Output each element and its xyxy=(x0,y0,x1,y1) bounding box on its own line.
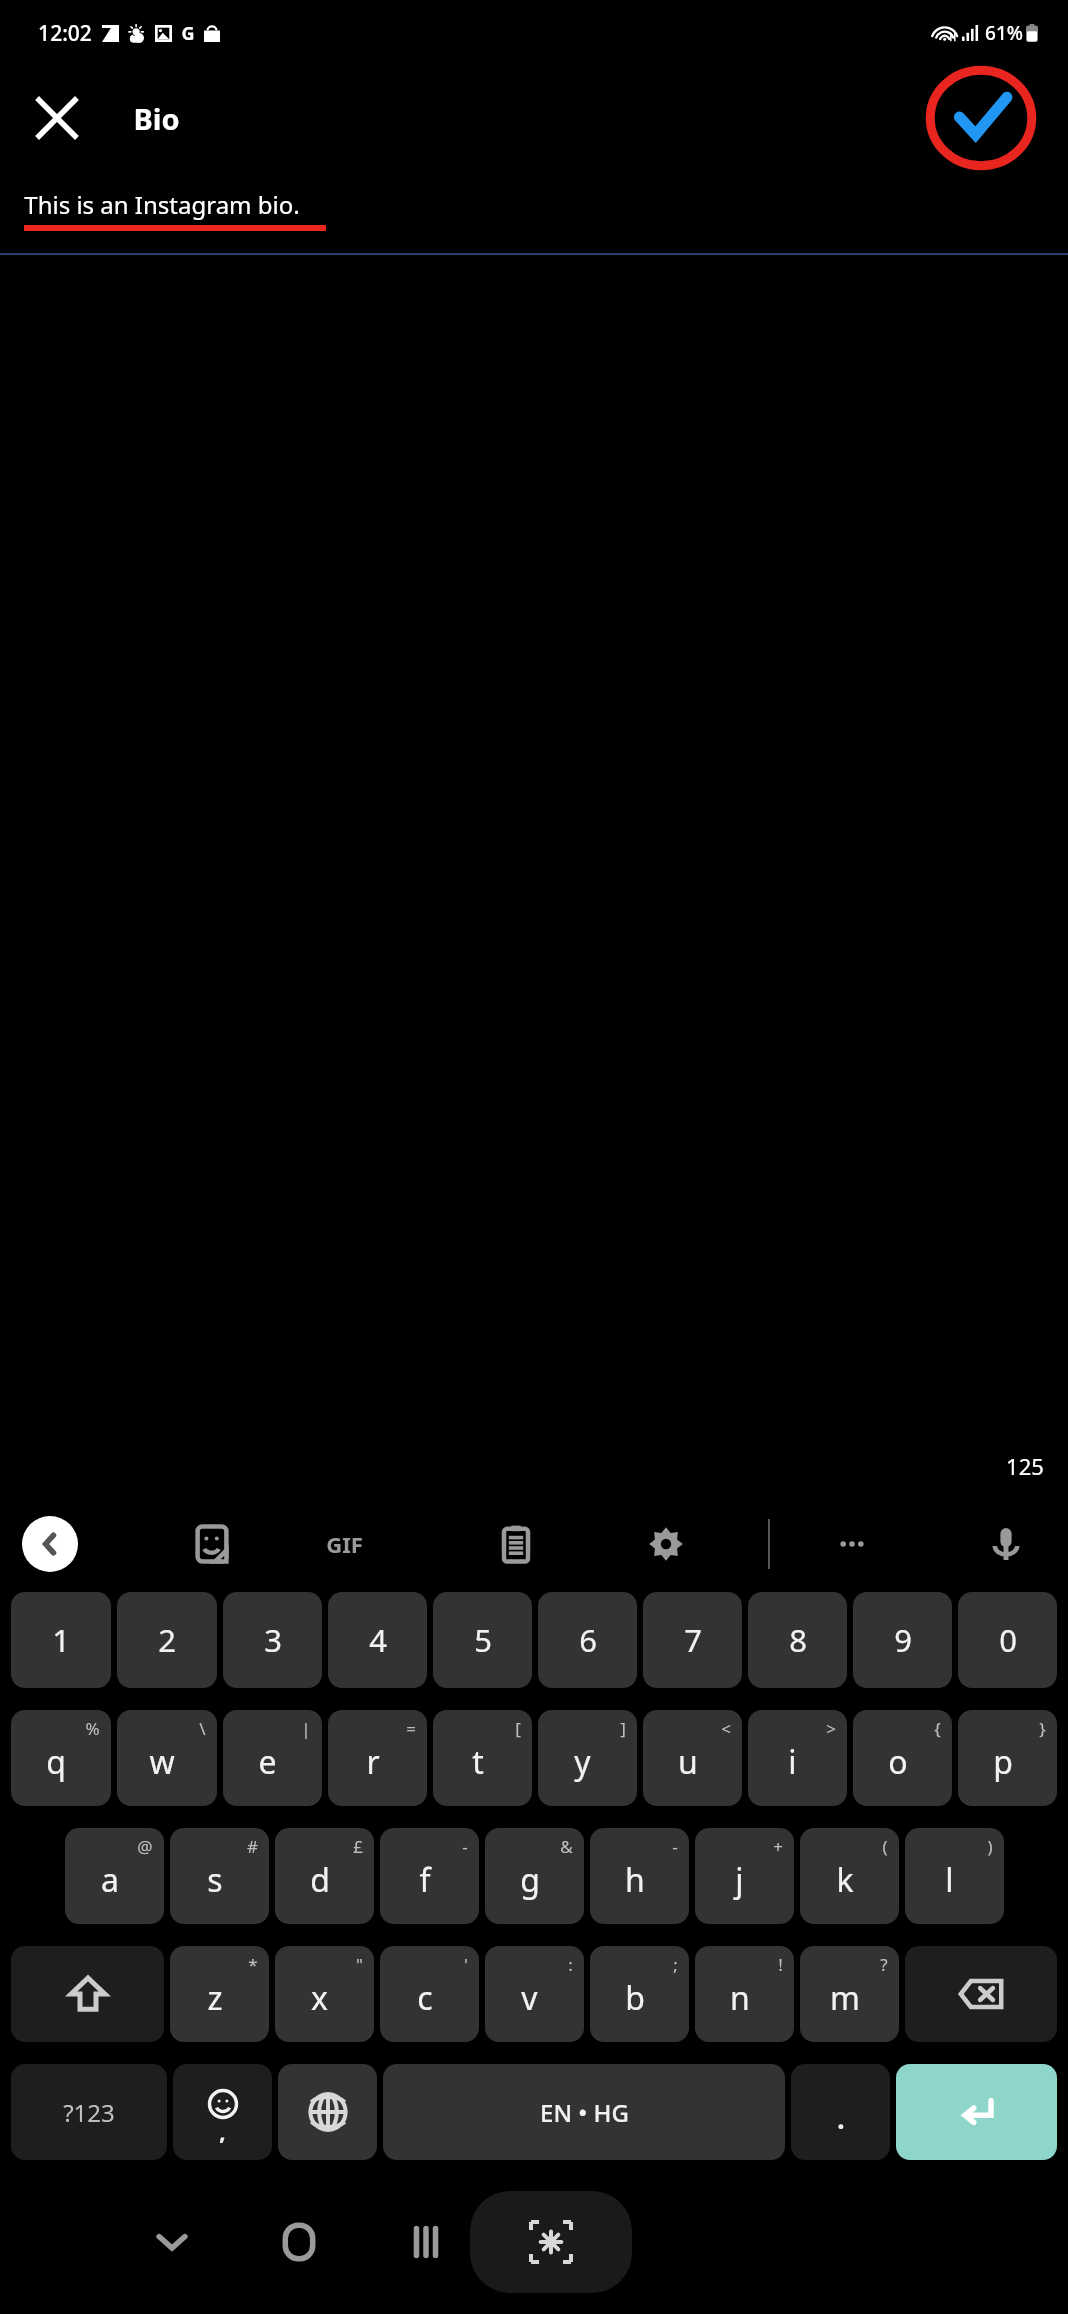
staticText: 6 xyxy=(579,1619,597,1661)
button[interactable]: x xyxy=(275,1946,374,2042)
staticText: z xyxy=(207,1976,223,2020)
button[interactable]: EN • HG xyxy=(383,2064,785,2160)
staticText: s xyxy=(207,1858,223,1902)
button[interactable]: p xyxy=(958,1710,1057,1806)
staticText: o xyxy=(888,1740,908,1784)
staticText: d xyxy=(310,1858,330,1902)
staticText: = xyxy=(406,1717,416,1740)
button[interactable]: ?123 xyxy=(11,2064,167,2160)
staticText: G xyxy=(181,21,195,46)
button[interactable]: 5 xyxy=(433,1592,532,1688)
button[interactable]: Settings xyxy=(630,1508,702,1580)
staticText: w xyxy=(149,1740,175,1784)
button[interactable]: m xyxy=(800,1946,899,2042)
staticText: ' xyxy=(464,1953,468,1976)
button[interactable]: w xyxy=(117,1710,217,1806)
button[interactable]: Voice input xyxy=(970,1508,1042,1580)
staticText: @ xyxy=(137,1835,153,1858)
button[interactable]: i xyxy=(748,1710,847,1806)
staticText: & xyxy=(560,1835,573,1858)
button[interactable]: 4 xyxy=(328,1592,427,1688)
button[interactable]: 8 xyxy=(748,1592,847,1688)
button[interactable]: 3 xyxy=(223,1592,322,1688)
staticText: < xyxy=(721,1717,731,1740)
button[interactable]: o xyxy=(853,1710,952,1806)
staticText: 61% xyxy=(985,20,1023,46)
staticText: ? xyxy=(880,1953,888,1976)
button[interactable]: g xyxy=(485,1828,584,1924)
staticText: + xyxy=(773,1835,783,1858)
button[interactable]: Hide keyboard xyxy=(128,2198,216,2286)
button[interactable]: 7 xyxy=(643,1592,742,1688)
staticText: 2 xyxy=(158,1619,176,1661)
staticText: u xyxy=(678,1740,698,1784)
button[interactable]: l xyxy=(905,1828,1004,1924)
staticText: l xyxy=(945,1858,954,1902)
button[interactable]: . xyxy=(791,2064,890,2160)
button[interactable]: n xyxy=(695,1946,794,2042)
staticText: 7 xyxy=(684,1619,702,1661)
button[interactable]: h xyxy=(590,1828,689,1924)
button[interactable]: s xyxy=(170,1828,269,1924)
button[interactable]: d xyxy=(275,1828,374,1924)
staticText: This is an Instagram bio. xyxy=(24,188,300,221)
button[interactable]: r xyxy=(328,1710,427,1806)
button[interactable]: k xyxy=(800,1828,899,1924)
button[interactable]: u xyxy=(643,1710,742,1806)
staticText: # xyxy=(247,1835,258,1858)
staticText: x xyxy=(311,1976,328,2020)
button[interactable]: z xyxy=(170,1946,269,2042)
staticText: GIF xyxy=(326,1529,363,1559)
button[interactable]: Done xyxy=(927,66,1035,170)
button[interactable]: Enter xyxy=(896,2064,1057,2160)
button[interactable]: v xyxy=(485,1946,584,2042)
button[interactable]: 2 xyxy=(117,1592,217,1688)
button[interactable]: 0 xyxy=(958,1592,1057,1688)
button[interactable]: Recents xyxy=(382,2198,470,2286)
button[interactable]: More options xyxy=(816,1508,888,1580)
staticText: r xyxy=(366,1740,380,1784)
button[interactable]: y xyxy=(538,1710,637,1806)
staticText: ! xyxy=(778,1953,783,1976)
button[interactable]: Stickers xyxy=(176,1508,248,1580)
staticText: - xyxy=(462,1835,468,1858)
button[interactable]: Change language xyxy=(278,2064,377,2160)
button[interactable]: c xyxy=(380,1946,479,2042)
staticText: , xyxy=(219,2116,226,2146)
staticText: - xyxy=(672,1835,678,1858)
button[interactable]: 9 xyxy=(853,1592,952,1688)
button[interactable]: e xyxy=(223,1710,322,1806)
button[interactable]: Clipboard xyxy=(480,1508,552,1580)
staticText: ) xyxy=(987,1835,993,1858)
button[interactable]: Shift xyxy=(11,1946,164,2042)
staticText: c xyxy=(417,1976,433,2020)
button[interactable]: Backspace xyxy=(905,1946,1057,2042)
button[interactable]: q xyxy=(11,1710,111,1806)
button[interactable]: a xyxy=(65,1828,164,1924)
staticText: 0 xyxy=(999,1619,1017,1661)
button[interactable]: Close xyxy=(22,83,92,153)
staticText: t xyxy=(472,1740,484,1784)
staticText: 8 xyxy=(789,1619,807,1661)
staticText: f xyxy=(419,1858,431,1902)
staticText: n xyxy=(730,1976,750,2020)
button[interactable]: Expand toolbar xyxy=(22,1516,78,1572)
button[interactable]: Emoji xyxy=(173,2064,272,2160)
button[interactable]: t xyxy=(433,1710,532,1806)
button[interactable]: This is an Instagram bio. xyxy=(24,188,1068,231)
button[interactable]: GIF xyxy=(308,1508,380,1580)
staticText: Bio xyxy=(133,99,180,138)
staticText: 1 xyxy=(52,1619,70,1661)
button[interactable]: b xyxy=(590,1946,689,2042)
button[interactable]: 6 xyxy=(538,1592,637,1688)
staticText: 5 xyxy=(474,1619,492,1661)
staticText: 3 xyxy=(264,1619,282,1661)
button[interactable]: j xyxy=(695,1828,794,1924)
button[interactable]: 1 xyxy=(11,1592,111,1688)
button[interactable]: f xyxy=(380,1828,479,1924)
button[interactable]: Home xyxy=(255,2198,343,2286)
staticText: 125 xyxy=(1006,1451,1044,1481)
button[interactable]: Shrink keyboard xyxy=(470,2191,632,2293)
staticText: } xyxy=(1039,1717,1046,1740)
staticText: [ xyxy=(515,1717,521,1740)
